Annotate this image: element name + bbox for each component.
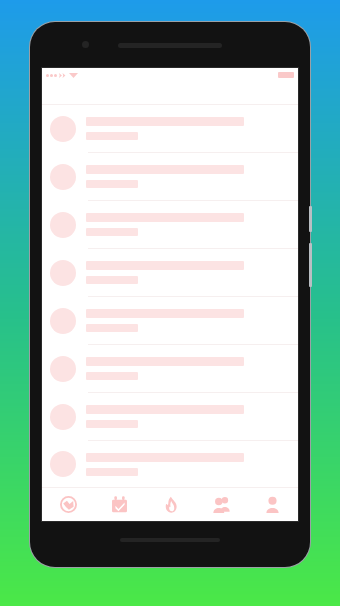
button[interactable] <box>42 441 298 487</box>
button[interactable] <box>42 345 298 392</box>
button[interactable] <box>42 105 298 152</box>
button[interactable]: Trending <box>145 488 196 521</box>
button[interactable]: Groups <box>196 488 247 521</box>
button[interactable] <box>42 201 298 248</box>
button[interactable] <box>42 249 298 296</box>
button[interactable] <box>42 153 298 200</box>
button[interactable]: Events <box>94 488 145 521</box>
button[interactable] <box>42 297 298 344</box>
button[interactable] <box>42 393 298 440</box>
button[interactable]: Explore <box>42 488 94 521</box>
button[interactable]: Profile <box>247 488 298 521</box>
